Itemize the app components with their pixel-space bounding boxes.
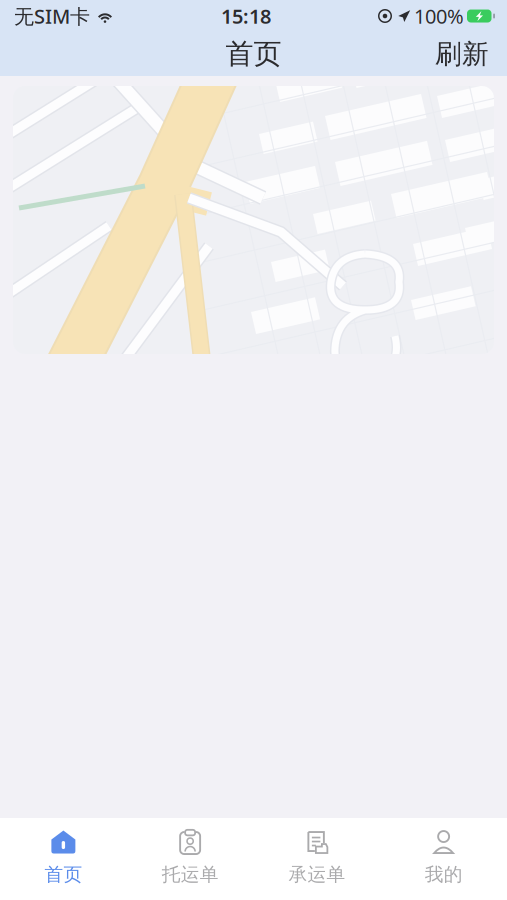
staticText: 托运单: [162, 863, 219, 886]
staticText: 无SIM卡: [14, 3, 90, 29]
button[interactable]: 承运单: [253, 818, 380, 900]
button[interactable]: 首页: [0, 818, 127, 900]
staticText: 刷新: [435, 38, 489, 70]
staticText: 承运单: [288, 863, 345, 886]
staticText: 100%: [414, 3, 464, 29]
staticText: 15:18: [221, 3, 271, 29]
button[interactable]: 刷新: [421, 30, 503, 78]
staticText: 首页: [225, 37, 281, 71]
button[interactable]: 我的: [380, 818, 507, 900]
button[interactable]: 托运单: [127, 818, 254, 900]
staticText: 我的: [425, 863, 463, 886]
staticText: 首页: [44, 863, 82, 886]
